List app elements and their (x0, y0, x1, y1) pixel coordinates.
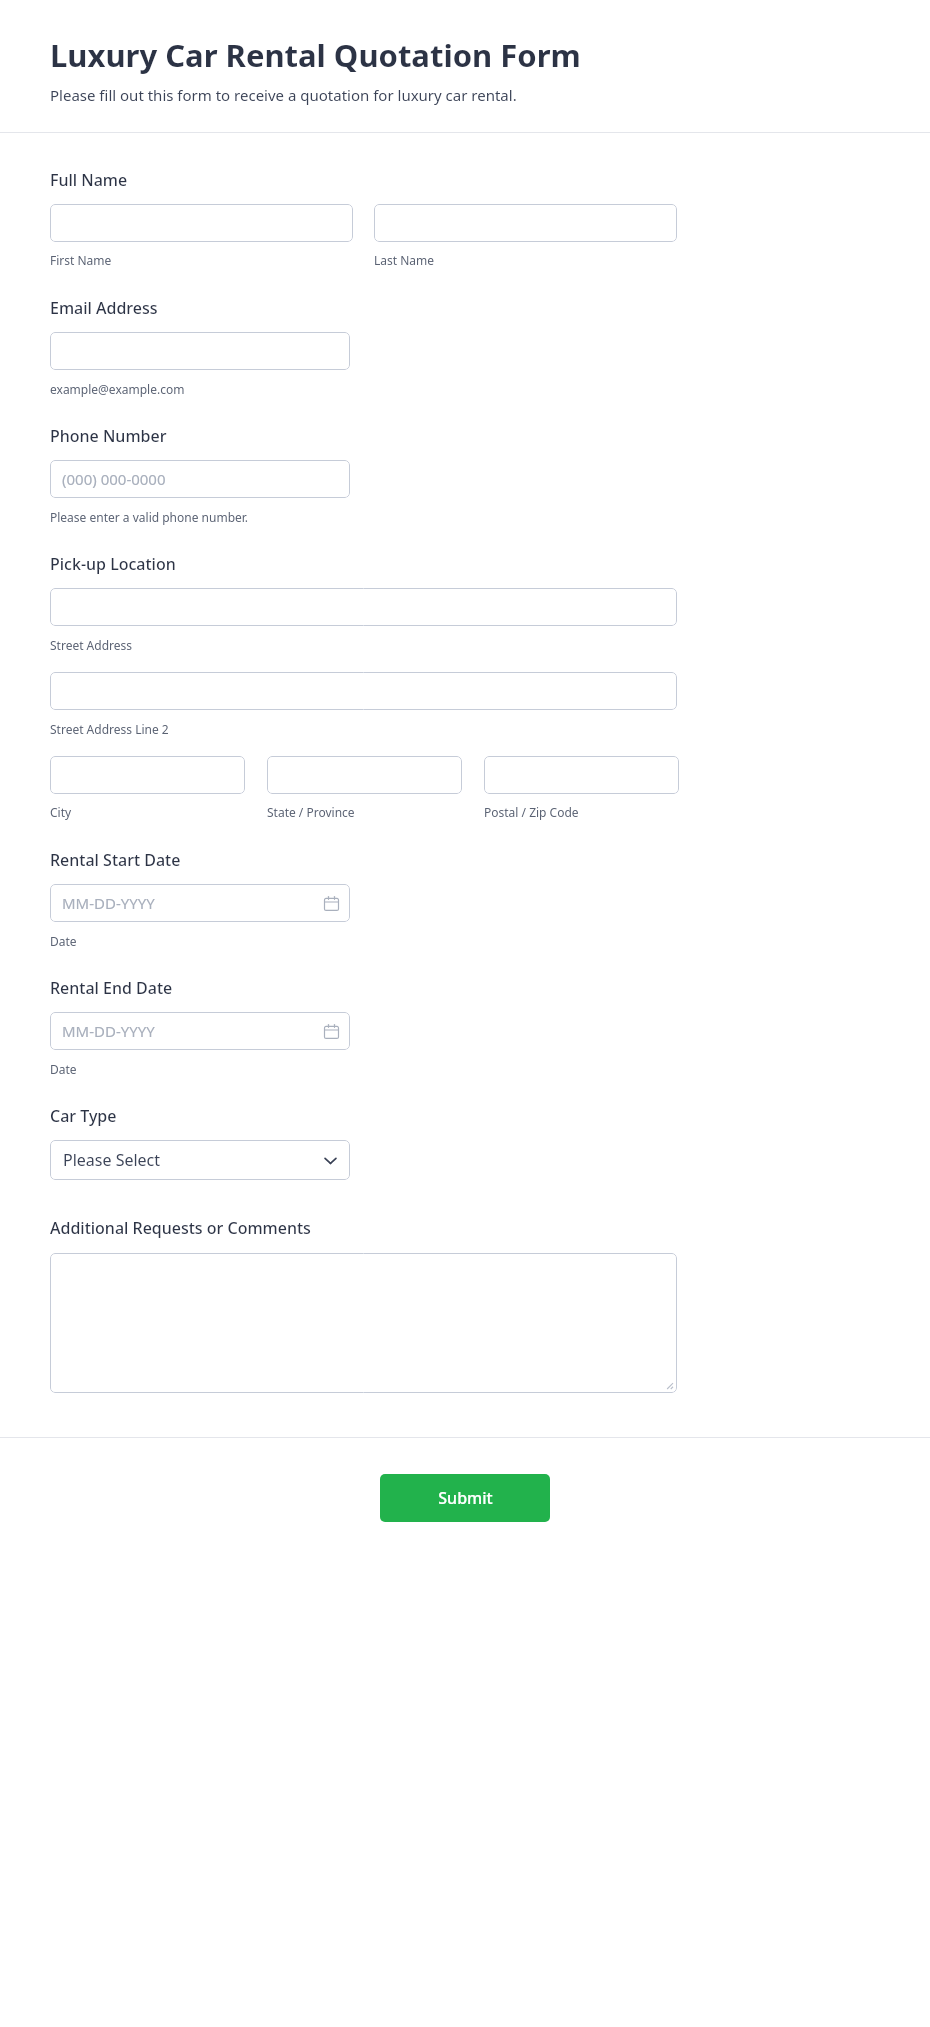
staticText: Rental End Date (50, 977, 173, 999)
staticText: Please fill out this form to receive a q… (50, 85, 517, 105)
button[interactable] (50, 672, 677, 710)
staticText: Please Select (63, 1149, 161, 1171)
staticText: Date (50, 1061, 77, 1077)
staticText: State / Province (267, 804, 355, 820)
staticText: Rental Start Date (50, 849, 181, 871)
staticText: Street Address Line 2 (50, 721, 169, 737)
staticText: example@example.com (50, 381, 185, 397)
button[interactable]: (000) 000-0000 (50, 460, 350, 498)
staticText: Full Name (50, 169, 128, 191)
button[interactable] (50, 588, 677, 626)
button[interactable] (484, 756, 679, 794)
staticText: City (50, 804, 72, 820)
button[interactable]: Submit (380, 1474, 550, 1522)
staticText: Last Name (374, 252, 435, 268)
button[interactable] (374, 204, 677, 242)
staticText: (000) 000-0000 (62, 469, 166, 489)
button[interactable] (50, 332, 350, 370)
button[interactable]: Pick rental start date (50, 884, 350, 922)
button[interactable]: Please Select (50, 1140, 350, 1180)
staticText: Luxury Car Rental Quotation Form (50, 34, 581, 76)
button[interactable] (50, 756, 245, 794)
staticText: MM-DD-YYYY (62, 893, 155, 913)
staticText: Submit (438, 1487, 493, 1509)
staticText: MM-DD-YYYY (62, 1021, 155, 1041)
staticText: Pick-up Location (50, 553, 176, 575)
staticText: First Name (50, 252, 112, 268)
staticText: Phone Number (50, 425, 167, 447)
staticText: Email Address (50, 297, 158, 319)
button[interactable] (50, 204, 353, 242)
staticText: Date (50, 933, 77, 949)
staticText: Additional Requests or Comments (50, 1217, 311, 1239)
staticText: Car Type (50, 1105, 117, 1127)
button[interactable] (267, 756, 462, 794)
button[interactable]: Pick rental end date (50, 1012, 350, 1050)
staticText: Street Address (50, 637, 133, 653)
button[interactable] (50, 1253, 677, 1393)
staticText: Postal / Zip Code (484, 804, 579, 820)
staticText: Please enter a valid phone number. (50, 509, 249, 525)
